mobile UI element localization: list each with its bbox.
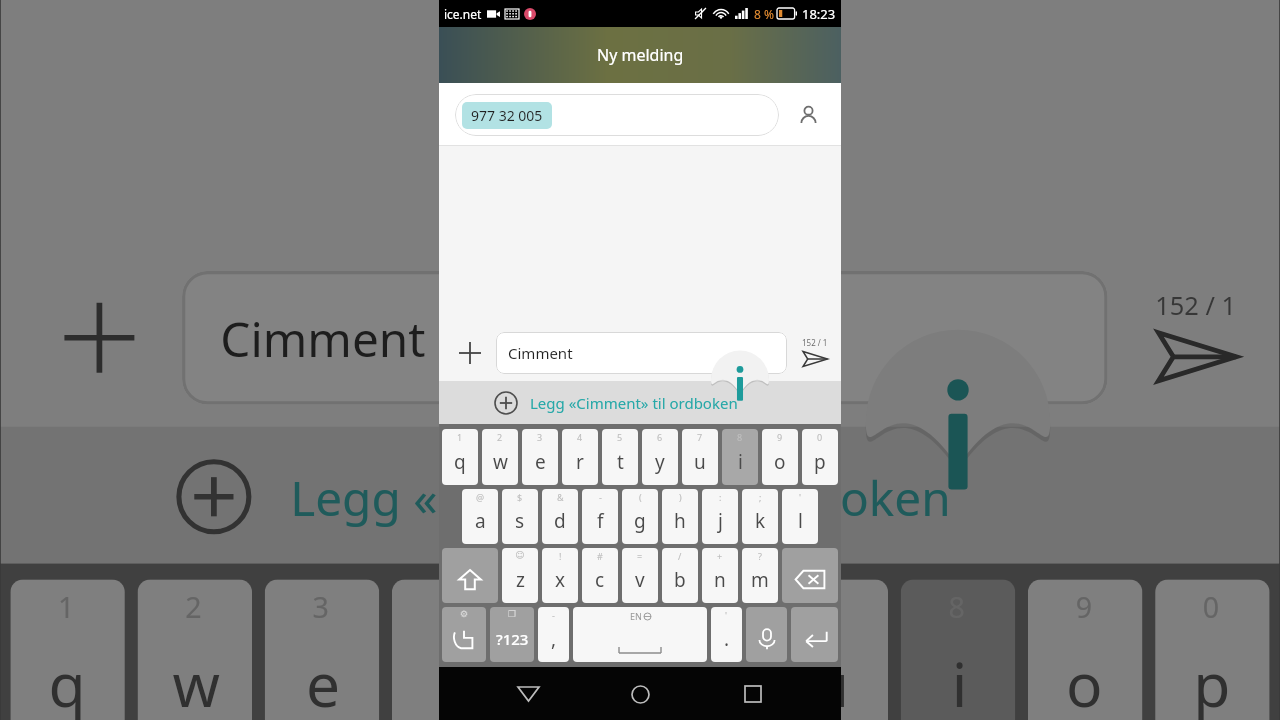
staticText: j: [718, 508, 723, 534]
button[interactable]: 1: [442, 429, 478, 485]
button[interactable]: +: [702, 548, 738, 603]
button[interactable]: 6: [642, 429, 678, 485]
button[interactable]: Tilbake: [504, 670, 552, 718]
staticText: Legg «Cimment» til ordboken: [530, 393, 738, 413]
button[interactable]: Shift: [442, 548, 498, 603]
button[interactable]: 0: [802, 429, 838, 485]
button[interactable]: 1: [10, 579, 125, 720]
staticText: 3: [312, 586, 332, 624]
button[interactable]: Enter: [791, 607, 838, 662]
staticText: 8 %: [754, 6, 774, 22]
staticText: 4: [577, 431, 583, 443]
button[interactable]: Velg kontakt: [791, 98, 825, 132]
staticText: Legg «Cimment» til ordboken: [290, 465, 952, 528]
button[interactable]: ?: [742, 548, 778, 603]
staticText: ': [799, 491, 802, 503]
button[interactable]: Symboler: [490, 607, 534, 662]
button[interactable]: :: [702, 489, 738, 544]
staticText: .: [724, 626, 730, 652]
staticText: r: [436, 643, 462, 720]
staticText: q: [48, 643, 87, 720]
button[interactable]: 3: [265, 579, 379, 720]
staticText: a: [475, 508, 486, 534]
button[interactable]: ': [782, 489, 818, 544]
staticText: Cimment: [220, 306, 427, 369]
staticText: -: [552, 609, 555, 621]
button[interactable]: Tale: [746, 607, 787, 662]
staticText: 6: [694, 586, 713, 624]
staticText: +: [717, 550, 723, 562]
staticText: s: [515, 508, 525, 534]
staticText: n: [714, 567, 726, 593]
button[interactable]: 977 32 005: [455, 94, 779, 136]
button[interactable]: Hjem: [616, 670, 664, 718]
button[interactable]: 7: [682, 429, 718, 485]
staticText: l: [798, 508, 803, 534]
button[interactable]: Cimment: [496, 332, 787, 374]
button[interactable]: !: [542, 548, 578, 603]
button[interactable]: Legg «Cimment» til ordboken: [1, 427, 1279, 563]
staticText: 0: [1203, 586, 1222, 624]
staticText: 4: [440, 586, 459, 624]
button[interactable]: 7: [774, 579, 888, 720]
button[interactable]: /: [662, 548, 698, 603]
button[interactable]: 5: [519, 579, 634, 720]
staticText: ❐: [508, 609, 517, 619]
button[interactable]: 0: [1155, 579, 1270, 720]
button[interactable]: Oversikt: [729, 670, 777, 718]
button[interactable]: Send: [1126, 245, 1266, 427]
button[interactable]: 9: [1028, 579, 1142, 720]
staticText: w: [172, 643, 220, 720]
button[interactable]: =: [622, 548, 658, 603]
staticText: $: [517, 491, 523, 503]
staticText: 6: [657, 431, 663, 443]
button[interactable]: 8: [722, 429, 758, 485]
button[interactable]: #: [582, 548, 618, 603]
button[interactable]: 4: [392, 579, 506, 720]
staticText: e: [535, 449, 546, 475]
button[interactable]: ☺: [502, 548, 538, 603]
button[interactable]: Legg ved: [52, 290, 147, 385]
staticText: ☺: [515, 550, 525, 560]
staticText: 0: [817, 431, 823, 443]
button[interactable]: 3: [522, 429, 558, 485]
button[interactable]: 9: [762, 429, 798, 485]
button[interactable]: $: [502, 489, 538, 544]
button[interactable]: Legg «Cimment» til ordboken: [439, 381, 841, 424]
button[interactable]: ): [662, 489, 698, 544]
staticText: o: [774, 449, 786, 475]
button[interactable]: 6: [646, 579, 761, 720]
staticText: =: [637, 550, 643, 562]
button[interactable]: ': [711, 607, 742, 662]
button[interactable]: Emoji: [442, 607, 486, 662]
button[interactable]: ;: [742, 489, 778, 544]
button[interactable]: 2: [138, 579, 252, 720]
button[interactable]: -: [538, 607, 569, 662]
staticText: 152 / 1: [802, 337, 828, 348]
staticText: ?123: [496, 629, 529, 649]
staticText: m: [751, 567, 769, 593]
button[interactable]: 4: [562, 429, 598, 485]
staticText: -: [599, 491, 602, 503]
button[interactable]: (: [622, 489, 658, 544]
button[interactable]: 8: [901, 579, 1015, 720]
button[interactable]: Mellomrom: [573, 607, 707, 662]
button[interactable]: &: [542, 489, 578, 544]
staticText: :: [719, 491, 722, 503]
staticText: u: [694, 449, 706, 475]
button[interactable]: Send: [793, 324, 837, 381]
button[interactable]: 2: [482, 429, 518, 485]
staticText: y: [655, 449, 665, 475]
staticText: 8: [737, 431, 743, 443]
button[interactable]: Slett: [782, 548, 838, 603]
staticText: x: [555, 567, 566, 593]
staticText: e: [306, 643, 341, 720]
button[interactable]: -: [582, 489, 618, 544]
staticText: v: [635, 567, 645, 593]
staticText: g: [634, 508, 646, 534]
button[interactable]: @: [462, 489, 498, 544]
staticText: 18:23: [802, 5, 836, 23]
button[interactable]: Cimment: [182, 271, 1107, 405]
button[interactable]: Legg ved: [455, 338, 485, 368]
button[interactable]: 5: [602, 429, 638, 485]
